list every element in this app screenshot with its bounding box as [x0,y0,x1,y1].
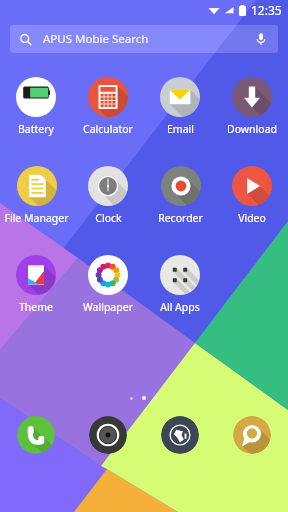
button[interactable]: Camera [89,416,127,454]
staticText: All Apps [160,300,200,314]
button[interactable]: Clock [88,165,128,226]
button[interactable]: Messages [233,416,271,454]
button[interactable]: File Manager [4,165,69,226]
button[interactable]: Phone [17,416,55,454]
staticText: Calculator [83,122,133,136]
button[interactable]: Wallpaper [83,254,133,315]
staticText: Clock [95,211,122,225]
staticText: File Manager [4,211,69,225]
button[interactable]: APUS Mobie Search [10,25,278,53]
button[interactable]: Email [160,76,200,137]
button[interactable]: All Apps [160,254,200,315]
staticText: Theme [19,300,53,314]
button[interactable]: Browser [161,416,199,454]
button[interactable]: Recorder [158,165,203,226]
button[interactable]: Download [227,76,277,137]
staticText: Email [167,122,194,136]
staticText: APUS Mobie Search [43,31,149,47]
staticText: Wallpaper [83,300,133,314]
staticText: Download [227,122,277,136]
button[interactable]: Calculator [83,76,133,137]
button[interactable]: Theme [16,254,56,315]
button[interactable]: Video [232,165,272,226]
staticText: Video [238,211,266,225]
button[interactable]: Battery [16,76,56,137]
staticText: Recorder [158,211,203,225]
staticText: Battery [18,122,54,136]
staticText: 12:35 [251,2,282,18]
